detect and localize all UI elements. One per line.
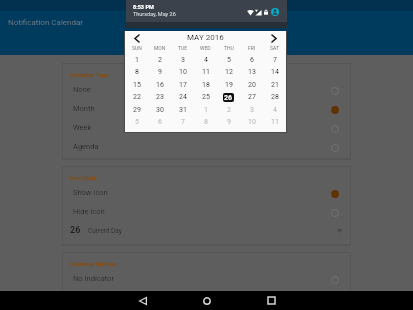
button[interactable]: 6 — [240, 54, 263, 66]
button[interactable]: 5 — [217, 54, 240, 66]
staticText: Calendar Options — [70, 260, 117, 267]
staticText: 9 — [158, 68, 162, 76]
button[interactable]: 29 — [125, 104, 148, 116]
button[interactable]: Back — [111, 291, 175, 310]
staticText: SUN — [132, 45, 142, 51]
staticText: Agenda — [73, 142, 99, 151]
button[interactable]: 21 — [263, 79, 286, 91]
button[interactable]: 27 — [240, 91, 263, 103]
button[interactable]: 8 — [194, 116, 217, 128]
staticText: 31 — [179, 106, 187, 114]
staticText: Notification Calendar — [8, 18, 84, 27]
button[interactable]: 22 — [125, 91, 148, 103]
staticText: FRI — [248, 45, 256, 51]
staticText: 3 — [181, 56, 185, 64]
staticText: No Indicator — [73, 274, 114, 283]
button[interactable]: Month — [63, 99, 350, 118]
button[interactable]: 9 — [148, 66, 171, 78]
button[interactable]: 15 — [125, 79, 148, 91]
staticText: 14 — [271, 68, 279, 76]
staticText: 7 — [273, 56, 277, 64]
staticText: 10 — [179, 68, 187, 76]
button[interactable]: Show Icon — [63, 183, 350, 202]
button[interactable]: 30 — [148, 104, 171, 116]
staticText: Show Icon — [73, 188, 108, 197]
button[interactable]: 1 — [125, 54, 148, 66]
button[interactable]: Recent apps — [239, 291, 303, 310]
button[interactable]: 23 — [148, 91, 171, 103]
staticText: 11 — [271, 118, 279, 126]
button[interactable]: 25 — [194, 91, 217, 103]
button[interactable]: 4 — [263, 104, 286, 116]
button[interactable]: Agenda — [63, 137, 350, 156]
staticText: 6 — [158, 118, 162, 126]
button[interactable]: 7 — [263, 54, 286, 66]
staticText: 18 — [202, 81, 210, 89]
staticText: 27 — [248, 93, 256, 101]
button[interactable]: 20 — [240, 79, 263, 91]
staticText: Icon Style — [70, 174, 97, 181]
staticText: 26 — [70, 225, 81, 236]
button[interactable]: 3 — [171, 54, 194, 66]
button[interactable]: Previous month — [131, 32, 143, 44]
button[interactable]: Next month — [268, 32, 280, 44]
staticText: 28 — [271, 93, 279, 101]
button[interactable]: 14 — [263, 66, 286, 78]
staticText: 30 — [156, 106, 164, 114]
button[interactable]: 9 — [217, 116, 240, 128]
button[interactable]: Week — [63, 118, 350, 137]
staticText: 6 — [250, 56, 254, 64]
staticText: 4 — [204, 56, 208, 64]
button[interactable]: 1 — [194, 104, 217, 116]
staticText: None — [73, 85, 91, 94]
staticText: 20 — [248, 81, 256, 89]
button[interactable]: Home — [175, 291, 239, 310]
button[interactable]: 11 — [194, 66, 217, 78]
staticText: THU — [224, 45, 234, 51]
staticText: 19 — [225, 81, 233, 89]
button[interactable]: 10 — [240, 116, 263, 128]
button[interactable]: 31 — [171, 104, 194, 116]
staticText: 8 — [135, 68, 139, 76]
button[interactable]: 24 — [171, 91, 194, 103]
button[interactable]: 6 — [148, 116, 171, 128]
staticText: 8 — [204, 118, 208, 126]
button[interactable]: 18 — [194, 79, 217, 91]
button[interactable]: 13 — [240, 66, 263, 78]
button[interactable]: 2 — [217, 104, 240, 116]
staticText: 2 — [158, 56, 162, 64]
button[interactable]: 26 — [217, 91, 240, 103]
button[interactable]: No Indicator — [63, 269, 350, 288]
button[interactable]: 28 — [263, 91, 286, 103]
button[interactable]: 4 — [194, 54, 217, 66]
staticText: 12 — [225, 68, 233, 76]
button[interactable]: 8 — [125, 66, 148, 78]
staticText: Current Day — [88, 227, 122, 235]
staticText: 26 — [224, 94, 233, 102]
button[interactable]: 7 — [171, 116, 194, 128]
button[interactable]: 2 — [148, 54, 171, 66]
button[interactable]: 3 — [240, 104, 263, 116]
staticText: 11 — [202, 68, 210, 76]
staticText: 5 — [227, 56, 231, 64]
staticText: MAY 2016 — [187, 33, 224, 42]
button[interactable]: None — [63, 80, 350, 99]
button[interactable]: 11 — [263, 116, 286, 128]
staticText: Week — [73, 123, 92, 132]
button[interactable]: 17 — [171, 79, 194, 91]
staticText: 5 — [135, 118, 139, 126]
staticText: 24 — [179, 93, 187, 101]
button[interactable]: 26 — [63, 221, 350, 240]
button[interactable]: 12 — [217, 66, 240, 78]
button[interactable]: 16 — [148, 79, 171, 91]
button[interactable]: 10 — [171, 66, 194, 78]
button[interactable]: Hide Icon — [63, 202, 350, 221]
staticText: 17 — [179, 81, 187, 89]
button[interactable]: 19 — [217, 79, 240, 91]
staticText: 22 — [133, 93, 141, 101]
staticText: 25 — [202, 93, 210, 101]
button[interactable]: 5 — [125, 116, 148, 128]
staticText: 9 — [227, 118, 231, 126]
staticText: Calendar Type — [70, 71, 109, 78]
staticText: WED — [200, 45, 211, 51]
